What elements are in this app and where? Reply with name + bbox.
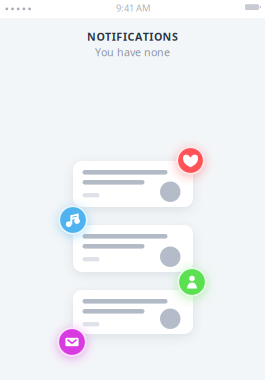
staticText: NOTIFICATIONS xyxy=(87,29,178,44)
staticText: You have none xyxy=(95,45,170,59)
staticText: 9:41 AM xyxy=(116,2,150,14)
